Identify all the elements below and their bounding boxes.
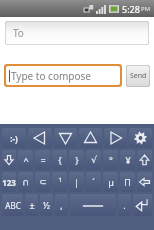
staticText: ABC: [5, 200, 21, 211]
button[interactable]: Type to compose: [6, 66, 120, 85]
staticText: ^: [23, 154, 29, 166]
staticText: 5:28: [122, 3, 140, 15]
button[interactable]: ½: [40, 194, 53, 216]
staticText: ∩: [22, 177, 29, 187]
staticText: 123: [2, 177, 16, 188]
button[interactable]: ENTER: [133, 194, 152, 216]
button[interactable]: =: [35, 150, 50, 170]
button[interactable]: SHIFT_UP: [2, 150, 16, 170]
staticText: {: [58, 154, 62, 166]
staticText: °: [109, 154, 113, 166]
staticText: µ: [108, 176, 114, 188]
button[interactable]: SHIFT_DOWN: [137, 150, 152, 170]
button[interactable]: ¥: [120, 150, 135, 170]
button[interactable]: GEAR: [129, 128, 152, 148]
button[interactable]: °: [103, 150, 118, 170]
staticText: ´: [92, 176, 95, 188]
button[interactable]: UP: [79, 128, 102, 148]
staticText: Send: [130, 71, 147, 81]
button[interactable]: |: [69, 172, 84, 192]
button[interactable]: }: [69, 150, 84, 170]
staticText: .: [123, 199, 126, 211]
staticText: ½: [43, 199, 50, 211]
button[interactable]: RIGHT: [104, 128, 127, 148]
staticText: ‚: [60, 199, 63, 211]
button[interactable]: ¹: [52, 172, 67, 192]
button[interactable]: ±: [25, 194, 38, 216]
button[interactable]: 123: [2, 172, 16, 192]
staticText: ¥: [125, 154, 131, 166]
staticText: To: [13, 26, 24, 40]
button[interactable]: BACK: [137, 172, 152, 192]
button[interactable]: .: [118, 194, 131, 216]
button[interactable]: ⊂: [35, 172, 50, 192]
staticText: |: [74, 176, 79, 188]
button[interactable]: ‚: [55, 194, 68, 216]
staticText: }: [75, 154, 79, 166]
staticText: ¹: [58, 176, 62, 188]
button[interactable]: To: [5, 21, 149, 45]
button[interactable]: √: [86, 150, 101, 170]
staticText: Type to compose: [11, 69, 91, 83]
staticText: ⊂: [39, 177, 47, 187]
button[interactable]: ∩: [18, 172, 33, 192]
staticText: √: [91, 155, 97, 165]
button[interactable]: ´: [86, 172, 101, 192]
staticText: Π: [124, 176, 131, 188]
button[interactable]: DOWN: [54, 128, 77, 148]
button[interactable]: Send: [126, 65, 150, 87]
staticText: :-): [10, 133, 18, 144]
staticText: =: [40, 154, 46, 166]
staticText: ±: [29, 199, 35, 211]
staticText: PM: [141, 5, 151, 13]
button[interactable]: :-): [2, 128, 26, 148]
button[interactable]: LEFT: [28, 128, 52, 148]
button[interactable]: SPACE: [70, 194, 116, 216]
button[interactable]: µ: [103, 172, 118, 192]
button[interactable]: Π: [120, 172, 135, 192]
button[interactable]: ^: [18, 150, 33, 170]
button[interactable]: {: [52, 150, 67, 170]
button[interactable]: ABC: [2, 194, 23, 216]
